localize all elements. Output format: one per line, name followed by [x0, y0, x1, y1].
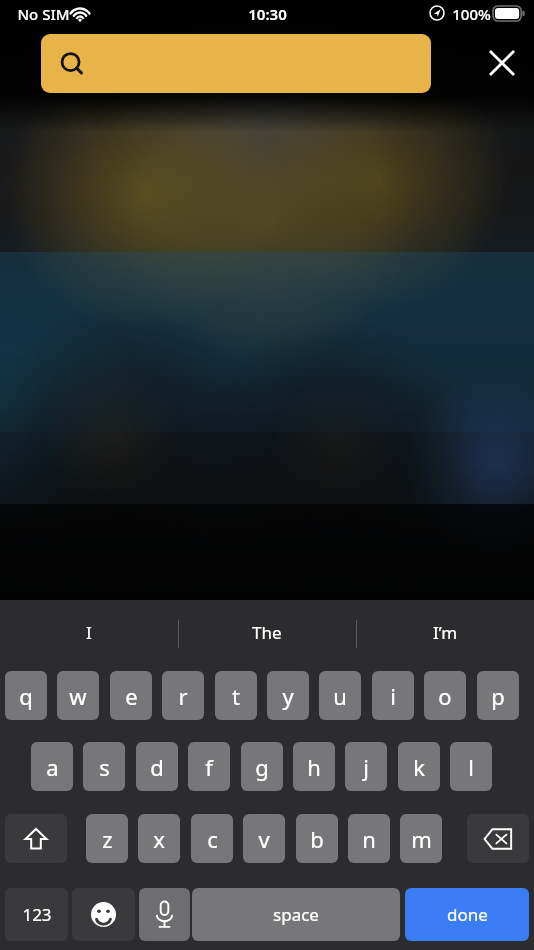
button[interactable]: a	[31, 742, 73, 791]
button[interactable]: 123	[5, 888, 68, 941]
button[interactable]: s	[83, 742, 125, 791]
button[interactable]: Shift	[5, 814, 67, 863]
staticText: n	[362, 824, 376, 854]
staticText: x	[153, 824, 165, 854]
button[interactable]: done	[405, 888, 529, 941]
staticText: w	[69, 681, 87, 711]
button[interactable]: g	[241, 742, 283, 791]
button[interactable]: I’m	[356, 604, 534, 660]
staticText: j	[363, 752, 369, 782]
staticText: t	[232, 681, 240, 711]
button[interactable]: Dictation	[139, 888, 190, 941]
button[interactable]: b	[296, 814, 338, 863]
button[interactable]: u	[319, 671, 361, 720]
button[interactable]: j	[345, 742, 387, 791]
button[interactable]: o	[424, 671, 466, 720]
staticText: space	[273, 903, 319, 926]
staticText: a	[46, 752, 59, 782]
staticText: I’m	[433, 621, 458, 644]
button[interactable]: c	[191, 814, 233, 863]
staticText: p	[491, 681, 505, 711]
button[interactable]: Close search	[478, 39, 526, 87]
button[interactable]: x	[138, 814, 180, 863]
button[interactable]: space	[192, 888, 400, 941]
button[interactable]: z	[86, 814, 128, 863]
staticText: d	[150, 752, 164, 782]
button[interactable]: l	[450, 742, 492, 791]
staticText: done	[447, 903, 488, 926]
button[interactable]: t	[215, 671, 257, 720]
staticText: q	[19, 681, 33, 711]
staticText: e	[125, 681, 138, 711]
staticText: u	[333, 681, 347, 711]
button[interactable]: r	[162, 671, 204, 720]
staticText: r	[178, 681, 188, 711]
staticText: z	[102, 824, 113, 854]
staticText: g	[255, 752, 269, 782]
staticText: c	[207, 824, 218, 854]
staticText: k	[413, 752, 425, 782]
button[interactable]: Emoji keyboard	[72, 888, 135, 941]
staticText: I	[86, 621, 92, 644]
staticText: m	[411, 824, 432, 854]
button[interactable]: k	[398, 742, 440, 791]
staticText: f	[205, 752, 213, 782]
button[interactable]: I	[0, 604, 178, 660]
staticText: l	[468, 752, 474, 782]
button[interactable]: n	[348, 814, 390, 863]
staticText: i	[390, 681, 396, 711]
staticText: 10:30	[248, 4, 287, 24]
staticText: 100%	[452, 4, 491, 24]
button[interactable]: d	[136, 742, 178, 791]
staticText: y	[282, 681, 294, 711]
button[interactable]: e	[110, 671, 152, 720]
button[interactable]: q	[5, 671, 47, 720]
button[interactable]: y	[267, 671, 309, 720]
staticText: v	[258, 824, 270, 854]
button[interactable]: h	[293, 742, 335, 791]
button[interactable]: i	[372, 671, 414, 720]
button[interactable]: m	[400, 814, 442, 863]
staticText: The	[252, 621, 282, 644]
staticText: h	[307, 752, 321, 782]
staticText: 123	[22, 903, 52, 926]
button[interactable]: v	[243, 814, 285, 863]
staticText: s	[99, 752, 110, 782]
staticText: No SIM	[17, 4, 70, 24]
staticText: o	[438, 681, 452, 711]
button[interactable]: p	[477, 671, 519, 720]
button[interactable]: Backspace	[467, 814, 529, 863]
button[interactable]: f	[188, 742, 230, 791]
button[interactable]: w	[57, 671, 99, 720]
button[interactable]	[41, 34, 431, 93]
staticText: b	[310, 824, 324, 854]
button[interactable]: The	[178, 604, 356, 660]
